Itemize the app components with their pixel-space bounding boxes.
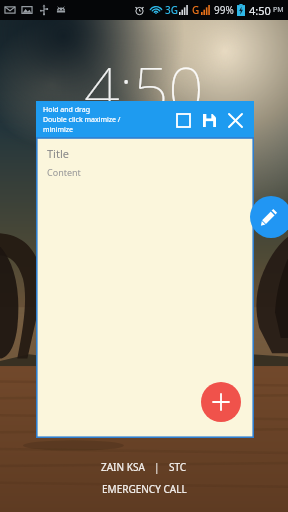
staticText: 4:50 — [249, 3, 271, 18]
staticText: EMERGENCY CALL — [102, 482, 187, 496]
button[interactable]: Add note — [201, 382, 241, 422]
button[interactable]: Save — [196, 107, 222, 133]
button[interactable]: EMERGENCY CALL — [94, 480, 195, 498]
staticText: 3G — [165, 3, 178, 17]
staticText: PM — [273, 5, 284, 15]
staticText: 4:50 — [84, 46, 204, 130]
button[interactable]: Hold and drag — [36, 101, 254, 138]
staticText: Hold and drag — [43, 105, 91, 115]
button[interactable]: Maximize — [170, 107, 196, 133]
staticText: ZAIN KSA — [101, 460, 145, 474]
button[interactable]: Close — [222, 107, 248, 133]
staticText: | — [154, 460, 160, 474]
staticText: Title — [47, 146, 69, 161]
staticText: minimize — [43, 125, 74, 135]
staticText: Double click maximize / — [43, 115, 121, 125]
button[interactable]: Title — [36, 138, 254, 438]
staticText: G — [192, 3, 200, 17]
staticText: STC — [169, 460, 187, 474]
button[interactable]: Edit — [250, 196, 288, 238]
staticText: Content — [47, 166, 81, 178]
staticText: 99% — [214, 3, 234, 17]
